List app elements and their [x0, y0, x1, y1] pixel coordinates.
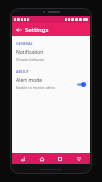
button[interactable]: Home	[35, 153, 49, 164]
button[interactable]: Alert mode	[12, 75, 90, 93]
button[interactable]: Hide keyboard	[72, 153, 86, 164]
button[interactable]: Back	[16, 153, 30, 164]
button[interactable]: Navigate up	[12, 23, 25, 36]
staticText: Notification	[16, 49, 44, 56]
button[interactable]: Alert mode toggle	[75, 80, 87, 88]
staticText: ABOUT	[16, 69, 29, 74]
staticText: Enable to receive alerts	[16, 85, 56, 90]
staticText: Alert mode	[16, 77, 43, 84]
staticText: GENERAL	[16, 41, 33, 46]
button[interactable]: Recents	[53, 153, 67, 164]
staticText: Choose behavior	[16, 57, 45, 62]
button[interactable]: Notification	[12, 47, 90, 65]
staticText: Settings	[25, 26, 49, 34]
